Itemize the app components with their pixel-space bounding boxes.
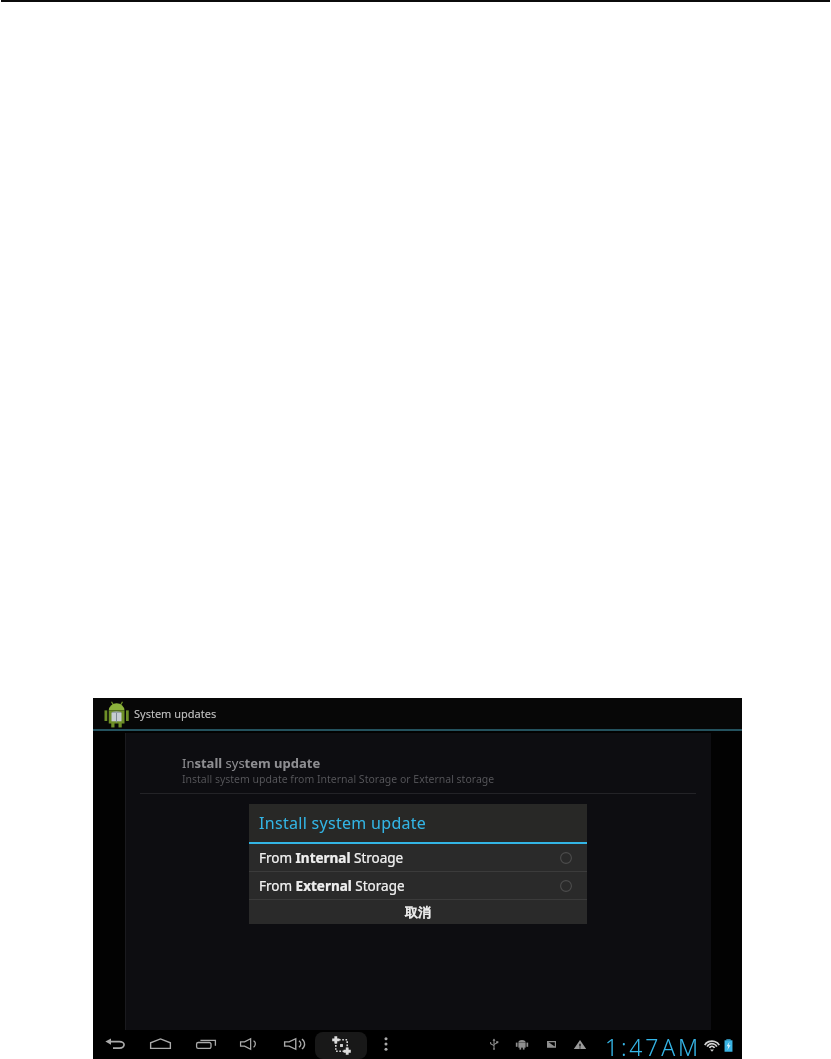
button[interactable]: Back	[105, 1038, 125, 1050]
button[interactable]: Battery charging	[724, 1039, 733, 1052]
staticText: System updates	[134, 706, 217, 721]
button[interactable]: More options	[384, 1037, 388, 1051]
staticText: Install system update from Internal Stor…	[182, 772, 495, 786]
button[interactable]: Screenshot	[315, 1032, 367, 1059]
staticText: 1:47AM	[605, 1031, 701, 1059]
staticText: Install system update	[259, 812, 427, 834]
button[interactable]: SD card	[545, 1038, 558, 1050]
button[interactable]: From Internal Stroage	[249, 844, 587, 871]
button[interactable]: From External Storage	[249, 872, 587, 899]
button[interactable]: 取消	[249, 900, 587, 924]
button[interactable]: Volume down	[240, 1038, 259, 1050]
staticText: From Internal Stroage	[259, 849, 404, 867]
staticText: 取消	[405, 904, 431, 920]
button[interactable]: Home	[150, 1038, 171, 1050]
staticText: From External Storage	[259, 877, 405, 895]
button[interactable]: System updates	[93, 698, 742, 729]
button[interactable]: Wi-Fi	[704, 1039, 720, 1052]
button[interactable]: Warning	[573, 1038, 587, 1051]
button[interactable]: Recents	[196, 1039, 216, 1050]
button[interactable]: Volume up	[284, 1038, 305, 1050]
button[interactable]: USB debugging	[515, 1037, 529, 1051]
staticText: Install system update	[182, 754, 321, 772]
button[interactable]: USB connected	[488, 1037, 500, 1051]
